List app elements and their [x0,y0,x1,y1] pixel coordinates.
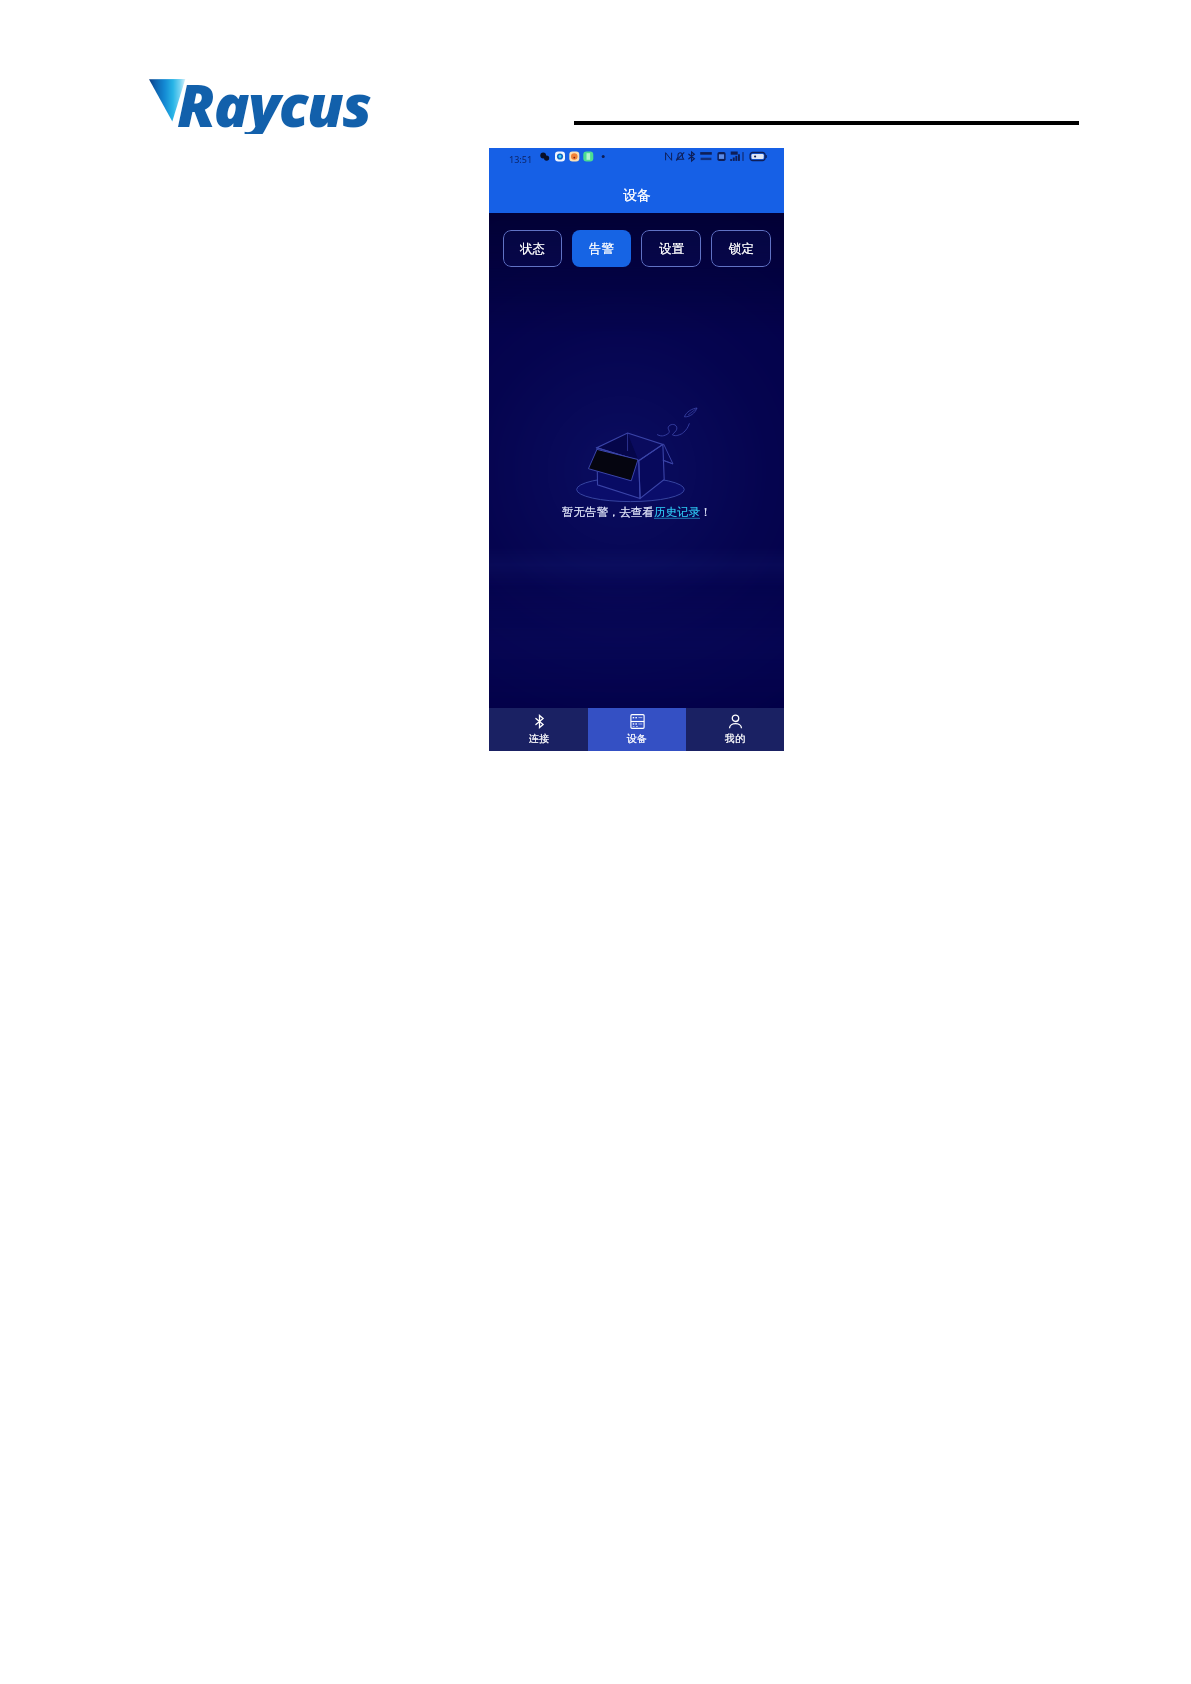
button[interactable]: 告警 [572,230,631,267]
staticText: Raycus [177,64,371,134]
staticText: 设备 [623,187,651,205]
staticText: 13:51 [509,153,533,165]
button[interactable]: 状态 [503,230,562,267]
staticText: 连接 [529,732,549,745]
staticText: 锁定 [729,241,754,257]
button[interactable]: 设置 [641,230,701,267]
staticText: 设备 [627,732,647,745]
button[interactable]: 锁定 [711,230,771,267]
button[interactable]: Devices [588,708,686,751]
button[interactable]: 暂无告警，去查看历史记录！ [562,505,712,519]
staticText: 设置 [659,241,684,257]
staticText: 告警 [589,241,614,257]
staticText: 状态 [520,241,545,257]
staticText: 我的 [725,732,745,745]
button[interactable]: Bluetooth connect [489,708,588,751]
button[interactable]: Profile [686,708,784,751]
